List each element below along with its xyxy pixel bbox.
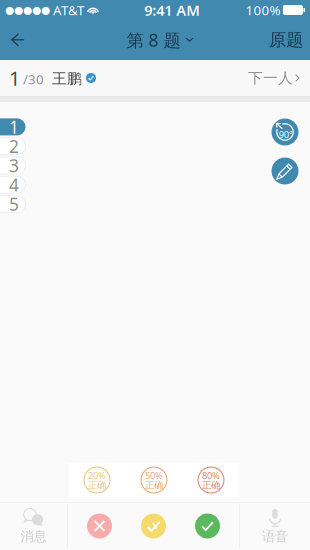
button[interactable]: Annotate [265,151,305,191]
staticText: 1 [9,115,19,138]
button[interactable]: 3 [0,156,25,175]
staticText: AT&T [50,1,87,19]
button[interactable]: 第 8 题 [126,20,193,60]
button[interactable]: Mark wrong [77,504,121,548]
staticText: 消息 [20,528,46,545]
staticText: 50% [145,469,163,481]
button[interactable]: Rotate 90 degrees [265,112,305,152]
button[interactable]: 消息 [0,502,67,549]
button[interactable]: Mark correct [185,504,229,548]
staticText: 正确 [202,479,220,491]
staticText: 语音 [262,528,288,545]
staticText: 正确 [88,479,106,491]
staticText: 3 [9,154,19,177]
button[interactable]: 1 [0,117,25,136]
staticText: 正确 [145,479,163,491]
staticText: 9:41 AM [144,0,200,20]
staticText: 1 [9,65,20,91]
button[interactable]: Back [0,20,36,60]
button[interactable]: 语音 [240,502,310,549]
button[interactable]: Mark partially correct [131,504,175,548]
button[interactable]: 2 [0,137,25,156]
button[interactable]: 50% [139,465,169,495]
button[interactable]: 原题 [262,20,310,60]
button[interactable]: 80% [196,465,226,495]
staticText: 20% [88,469,106,481]
staticText: 90° [279,128,293,141]
button[interactable]: 5 [0,195,25,214]
staticText: 王鹏 [44,69,82,87]
button[interactable]: 20% [82,465,112,495]
button[interactable]: 下一人 [248,61,300,95]
staticText: 第 8 题 [126,28,180,51]
staticText: ●●●●● [5,4,50,16]
staticText: 4 [9,173,19,196]
staticText: 原题 [269,29,303,51]
staticText: 100% [245,1,280,19]
staticText: 2 [9,135,19,158]
staticText: 80% [202,469,220,481]
staticText: 5 [9,193,19,216]
staticText: /30 [20,70,44,88]
button[interactable]: 4 [0,175,25,194]
staticText: 下一人 [248,69,293,87]
